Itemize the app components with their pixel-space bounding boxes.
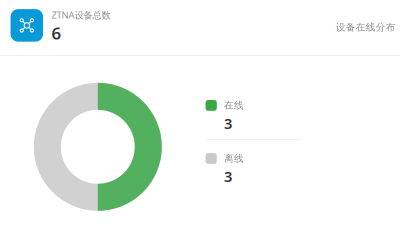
button[interactable]: 离线 xyxy=(206,153,302,184)
staticText: ZTNA设备总数 xyxy=(51,9,110,21)
staticText: 设备在线分布 xyxy=(336,21,396,33)
staticText: 3 xyxy=(224,166,232,186)
button[interactable]: 设备在线分布 xyxy=(334,21,396,33)
button[interactable]: ZTNA设备总数 xyxy=(10,9,122,43)
staticText: 6 xyxy=(51,22,61,44)
staticText: 离线 xyxy=(224,152,244,165)
button[interactable]: 在线 xyxy=(206,100,302,131)
staticText: 3 xyxy=(224,113,232,133)
staticText: 在线 xyxy=(224,99,244,111)
